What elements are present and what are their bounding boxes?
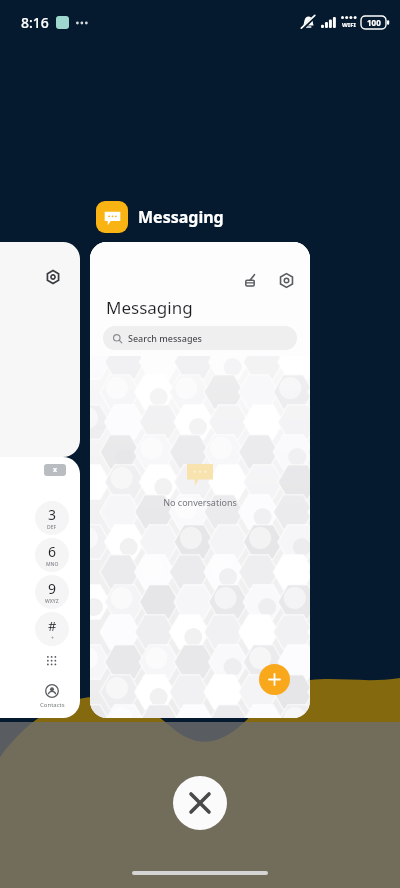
button[interactable]: Search messages (103, 326, 297, 350)
staticText: Search messages (128, 332, 202, 344)
staticText: WXYZ (45, 598, 59, 605)
button[interactable]: Contacts (28, 684, 76, 709)
staticText: Contacts (40, 701, 65, 709)
button[interactable]: Clean up (240, 270, 260, 290)
staticText: x (53, 465, 58, 475)
button[interactable]: Settings (276, 270, 296, 290)
staticText: 6 (48, 542, 57, 561)
button[interactable]: Clear all recent apps (173, 776, 227, 830)
button[interactable]: 9 (35, 575, 69, 609)
button[interactable]: Messaging (96, 201, 224, 233)
staticText: 9 (48, 579, 57, 598)
button[interactable]: 3 (35, 501, 69, 535)
button[interactable]: # (35, 612, 69, 646)
button[interactable]: Clean up (90, 242, 310, 718)
button[interactable]: Settings (0, 242, 80, 457)
button[interactable]: 6 (35, 538, 69, 572)
staticText: # (48, 617, 57, 635)
staticText: + (51, 635, 54, 642)
staticText: No conversations (163, 496, 237, 508)
staticText: 8:16 (21, 13, 49, 32)
staticText: 100 (367, 17, 381, 28)
staticText: DEF (47, 524, 57, 531)
staticText: WIFI (342, 21, 356, 29)
staticText: 3 (48, 505, 57, 524)
staticText: Messaging (138, 206, 224, 228)
button[interactable]: Backspace (44, 464, 66, 476)
button[interactable]: Settings (44, 268, 62, 286)
button[interactable]: Backspace (0, 457, 80, 718)
staticText: MNO (46, 561, 59, 568)
button[interactable]: New conversation (259, 664, 290, 695)
button[interactable]: Keypad (44, 653, 60, 669)
staticText: Messaging (106, 296, 193, 319)
